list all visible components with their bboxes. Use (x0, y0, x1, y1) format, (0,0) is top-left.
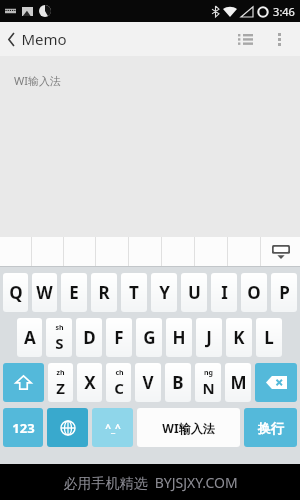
button[interactable]: X (77, 363, 102, 402)
staticText: A (24, 326, 36, 349)
button[interactable] (129, 237, 161, 267)
button[interactable] (162, 237, 194, 267)
staticText: 换行 (258, 420, 284, 436)
button[interactable]: ng (195, 363, 221, 402)
button[interactable]: G (136, 318, 162, 357)
staticText: N (202, 378, 215, 398)
staticText: B (172, 371, 184, 394)
staticText: 必用手机精选 BYJSJXY.COM (63, 473, 238, 492)
staticText: E (69, 281, 79, 304)
staticText: T (129, 281, 139, 304)
staticText: M (230, 371, 247, 394)
button[interactable]: Backspace (255, 363, 297, 402)
staticText: F (114, 326, 124, 349)
button[interactable] (0, 237, 31, 267)
staticText: V (142, 371, 154, 394)
staticText: ng (204, 368, 213, 378)
button[interactable]: WI输入法 (137, 408, 240, 447)
button[interactable]: Memo (0, 24, 77, 54)
button[interactable]: ^_^ (92, 408, 133, 447)
staticText: WI输入法 (162, 420, 215, 436)
staticText: Memo (21, 29, 67, 49)
staticText: ch (115, 368, 124, 378)
staticText: D (83, 326, 96, 349)
button[interactable]: P (271, 273, 297, 312)
button[interactable]: I (211, 273, 237, 312)
button[interactable]: List view (228, 22, 262, 56)
staticText: C (114, 378, 124, 398)
button[interactable]: 123 (3, 408, 43, 447)
button[interactable]: L (256, 318, 282, 357)
button[interactable]: Switch language (47, 408, 88, 447)
staticText: K (233, 326, 245, 349)
button[interactable]: sh (46, 318, 72, 357)
staticText: H (172, 326, 186, 349)
staticText: X (84, 371, 96, 394)
other: Hide keyboard (272, 245, 290, 259)
button[interactable]: D (76, 318, 102, 357)
staticText: Q (9, 281, 23, 304)
button[interactable]: J (196, 318, 222, 357)
staticText: 3:46 (273, 4, 295, 19)
staticText: U (188, 281, 201, 304)
button[interactable]: Y (151, 273, 177, 312)
button[interactable] (195, 237, 227, 267)
staticText: Z (56, 378, 65, 398)
staticText: ^_^ (105, 421, 121, 435)
button[interactable]: O (241, 273, 267, 312)
button[interactable]: Shift (3, 363, 44, 402)
button[interactable]: U (181, 273, 207, 312)
button[interactable]: R (91, 273, 117, 312)
button[interactable]: ch (106, 363, 131, 402)
staticText: G (143, 326, 156, 349)
staticText: W (36, 281, 53, 304)
staticText: L (264, 326, 274, 349)
button[interactable]: M (225, 363, 251, 402)
button[interactable]: K (226, 318, 252, 357)
staticText: zh (56, 368, 65, 378)
button[interactable]: A (17, 318, 42, 357)
button[interactable] (228, 237, 260, 267)
staticText: Y (159, 281, 170, 304)
staticText: P (279, 281, 290, 304)
button[interactable] (96, 237, 128, 267)
button[interactable]: 换行 (244, 408, 297, 447)
button[interactable]: W (32, 273, 57, 312)
staticText: sh (55, 323, 64, 333)
staticText: S (55, 333, 64, 353)
button[interactable]: E (61, 273, 87, 312)
button[interactable]: H (166, 318, 192, 357)
button[interactable] (32, 237, 63, 267)
button[interactable]: T (121, 273, 147, 312)
staticText: I (221, 281, 228, 304)
staticText: R (98, 281, 110, 304)
button[interactable]: Q (3, 273, 28, 312)
button[interactable]: More options (262, 22, 296, 56)
button[interactable]: zh (48, 363, 73, 402)
staticText: J (206, 326, 212, 349)
button[interactable] (64, 237, 95, 267)
staticText: O (247, 281, 261, 304)
staticText: WI输入法 (14, 73, 61, 88)
button[interactable]: B (165, 363, 191, 402)
staticText: 123 (12, 419, 35, 437)
button[interactable]: Hide keyboard (261, 237, 300, 267)
button[interactable]: F (106, 318, 132, 357)
button[interactable]: V (135, 363, 161, 402)
